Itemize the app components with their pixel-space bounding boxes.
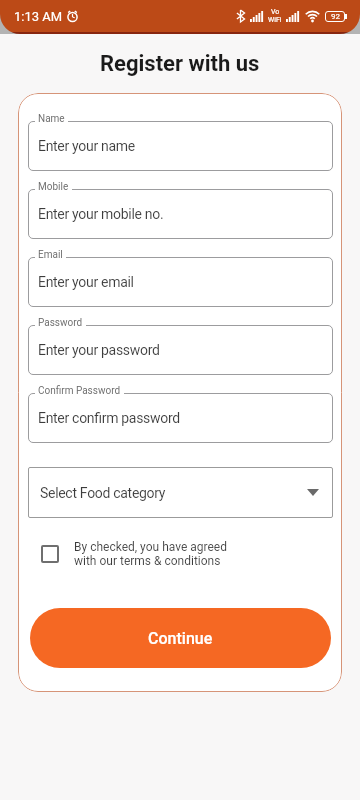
button[interactable]: Enter your email [28, 257, 333, 307]
staticText: Name [38, 113, 65, 125]
staticText: Continue [148, 629, 213, 648]
staticText: Register with us [100, 51, 260, 77]
button[interactable]: Continue [30, 608, 331, 668]
button[interactable]: Enter your password [28, 325, 333, 375]
staticText: 1:13 AM [14, 9, 63, 24]
staticText: Enter your mobile no. [38, 206, 164, 222]
staticText: Enter your password [38, 342, 160, 358]
staticText: Enter your email [38, 274, 134, 290]
staticText: By checked, you have agreed [74, 540, 227, 554]
staticText: Vo [271, 8, 280, 16]
staticText: Select Food category [40, 485, 166, 501]
button[interactable]: Enter your name [28, 121, 333, 171]
staticText: Enter your name [38, 138, 135, 154]
staticText: WiFi [268, 16, 282, 24]
staticText: Enter confirm password [38, 410, 180, 426]
staticText: 92 [331, 12, 340, 21]
button[interactable]: Enter confirm password [28, 393, 333, 443]
button[interactable]: Select Food category [28, 467, 333, 518]
staticText: with our terms & conditions [74, 554, 221, 568]
staticText: Password [38, 317, 83, 329]
staticText: Email [38, 249, 63, 261]
button[interactable]: Enter your mobile no. [28, 189, 333, 239]
staticText: Mobile [38, 181, 69, 193]
button[interactable]: By checked, you have agreed [41, 540, 227, 568]
staticText: Confirm Password [38, 385, 121, 397]
